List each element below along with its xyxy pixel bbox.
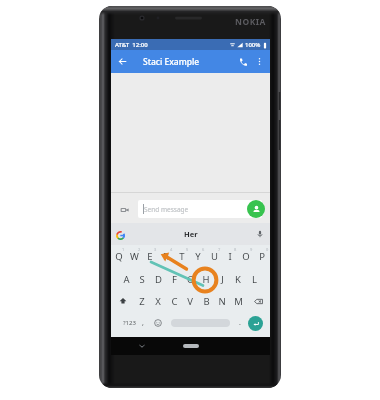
button[interactable]: Home [183, 344, 199, 348]
button[interactable]: G [182, 268, 198, 290]
button[interactable]: Z [134, 290, 150, 312]
button[interactable]: Contact [247, 200, 265, 218]
button[interactable]: R [158, 245, 174, 267]
staticText: . [239, 318, 241, 328]
button[interactable]: Staci Example [143, 56, 200, 68]
button[interactable]: Back [111, 50, 133, 73]
staticText: Send message [144, 205, 189, 214]
button[interactable]: Enter [248, 316, 263, 331]
button[interactable]: D [150, 268, 166, 290]
button[interactable]: K [230, 268, 246, 290]
button[interactable]: C [166, 290, 182, 312]
staticText: P [259, 250, 265, 263]
staticText: V [187, 295, 193, 308]
button[interactable]: B [198, 290, 214, 312]
staticText: J [221, 273, 224, 286]
staticText: O [242, 250, 250, 263]
staticText: , [142, 318, 144, 328]
button[interactable]: O [238, 245, 254, 267]
button[interactable]: ?123 [117, 312, 141, 334]
staticText: C [171, 295, 178, 308]
button[interactable]: F [166, 268, 182, 290]
button[interactable]: Her [184, 229, 198, 239]
button[interactable]: Q [111, 245, 126, 267]
button[interactable]: Shift [111, 290, 134, 312]
button[interactable]: Send message [138, 200, 262, 218]
button[interactable]: T [174, 245, 190, 267]
staticText: K [235, 273, 241, 286]
button[interactable]: Voice input [256, 230, 264, 238]
button[interactable]: . [232, 312, 248, 334]
button[interactable]: M [230, 290, 246, 312]
button[interactable]: J [214, 268, 230, 290]
button[interactable]: V [182, 290, 198, 312]
staticText: 1 [122, 247, 125, 252]
button[interactable]: P [254, 245, 270, 267]
staticText: D [155, 273, 162, 286]
staticText: L [252, 273, 257, 286]
button[interactable]: , [135, 312, 151, 334]
staticText: ?123 [123, 319, 136, 327]
button[interactable]: U [206, 245, 222, 267]
button[interactable]: Google [116, 231, 125, 240]
staticText: F [172, 273, 177, 286]
staticText: 100% [245, 41, 261, 49]
staticText: Y [195, 250, 201, 263]
staticText: U [211, 250, 218, 263]
staticText: X [155, 295, 161, 308]
staticText: A [123, 273, 130, 286]
staticText: 5 [186, 247, 189, 252]
button[interactable]: Backspace [246, 290, 270, 312]
staticText: W [130, 250, 139, 263]
staticText: H [202, 273, 210, 286]
button[interactable]: X [150, 290, 166, 312]
button[interactable]: N [214, 290, 230, 312]
button[interactable]: A [118, 268, 134, 290]
button[interactable]: E [142, 245, 158, 267]
button[interactable]: Attach [119, 204, 130, 215]
staticText: M [234, 295, 243, 308]
button[interactable]: Call [234, 50, 252, 73]
button[interactable]: H [198, 268, 214, 290]
staticText: 6 [202, 247, 205, 252]
staticText: 3 [154, 247, 157, 252]
staticText: 2 [138, 247, 141, 252]
staticText: I [228, 250, 232, 263]
staticText: 0 [266, 247, 269, 252]
staticText: S [139, 273, 145, 286]
staticText: 9 [250, 247, 253, 252]
staticText: AT&T 12:00 [115, 41, 148, 49]
staticText: E [147, 250, 153, 263]
staticText: T [179, 250, 185, 263]
button[interactable]: L [246, 268, 262, 290]
button[interactable]: S [134, 268, 150, 290]
staticText: Q [115, 250, 123, 263]
button[interactable]: Y [190, 245, 206, 267]
staticText: 8 [234, 247, 237, 252]
staticText: 7 [218, 247, 221, 252]
staticText: R [163, 250, 169, 263]
staticText: 4 [170, 247, 173, 252]
button[interactable]: Emoji [150, 312, 166, 334]
staticText: B [203, 295, 210, 308]
staticText: G [187, 273, 194, 286]
staticText: N [218, 295, 226, 308]
button[interactable]: I [222, 245, 238, 267]
button[interactable]: Hide keyboard [137, 341, 147, 351]
staticText: Z [139, 295, 145, 308]
button[interactable]: W [126, 245, 142, 267]
staticText: NOKIA [235, 16, 266, 28]
button[interactable]: More options [252, 50, 267, 73]
